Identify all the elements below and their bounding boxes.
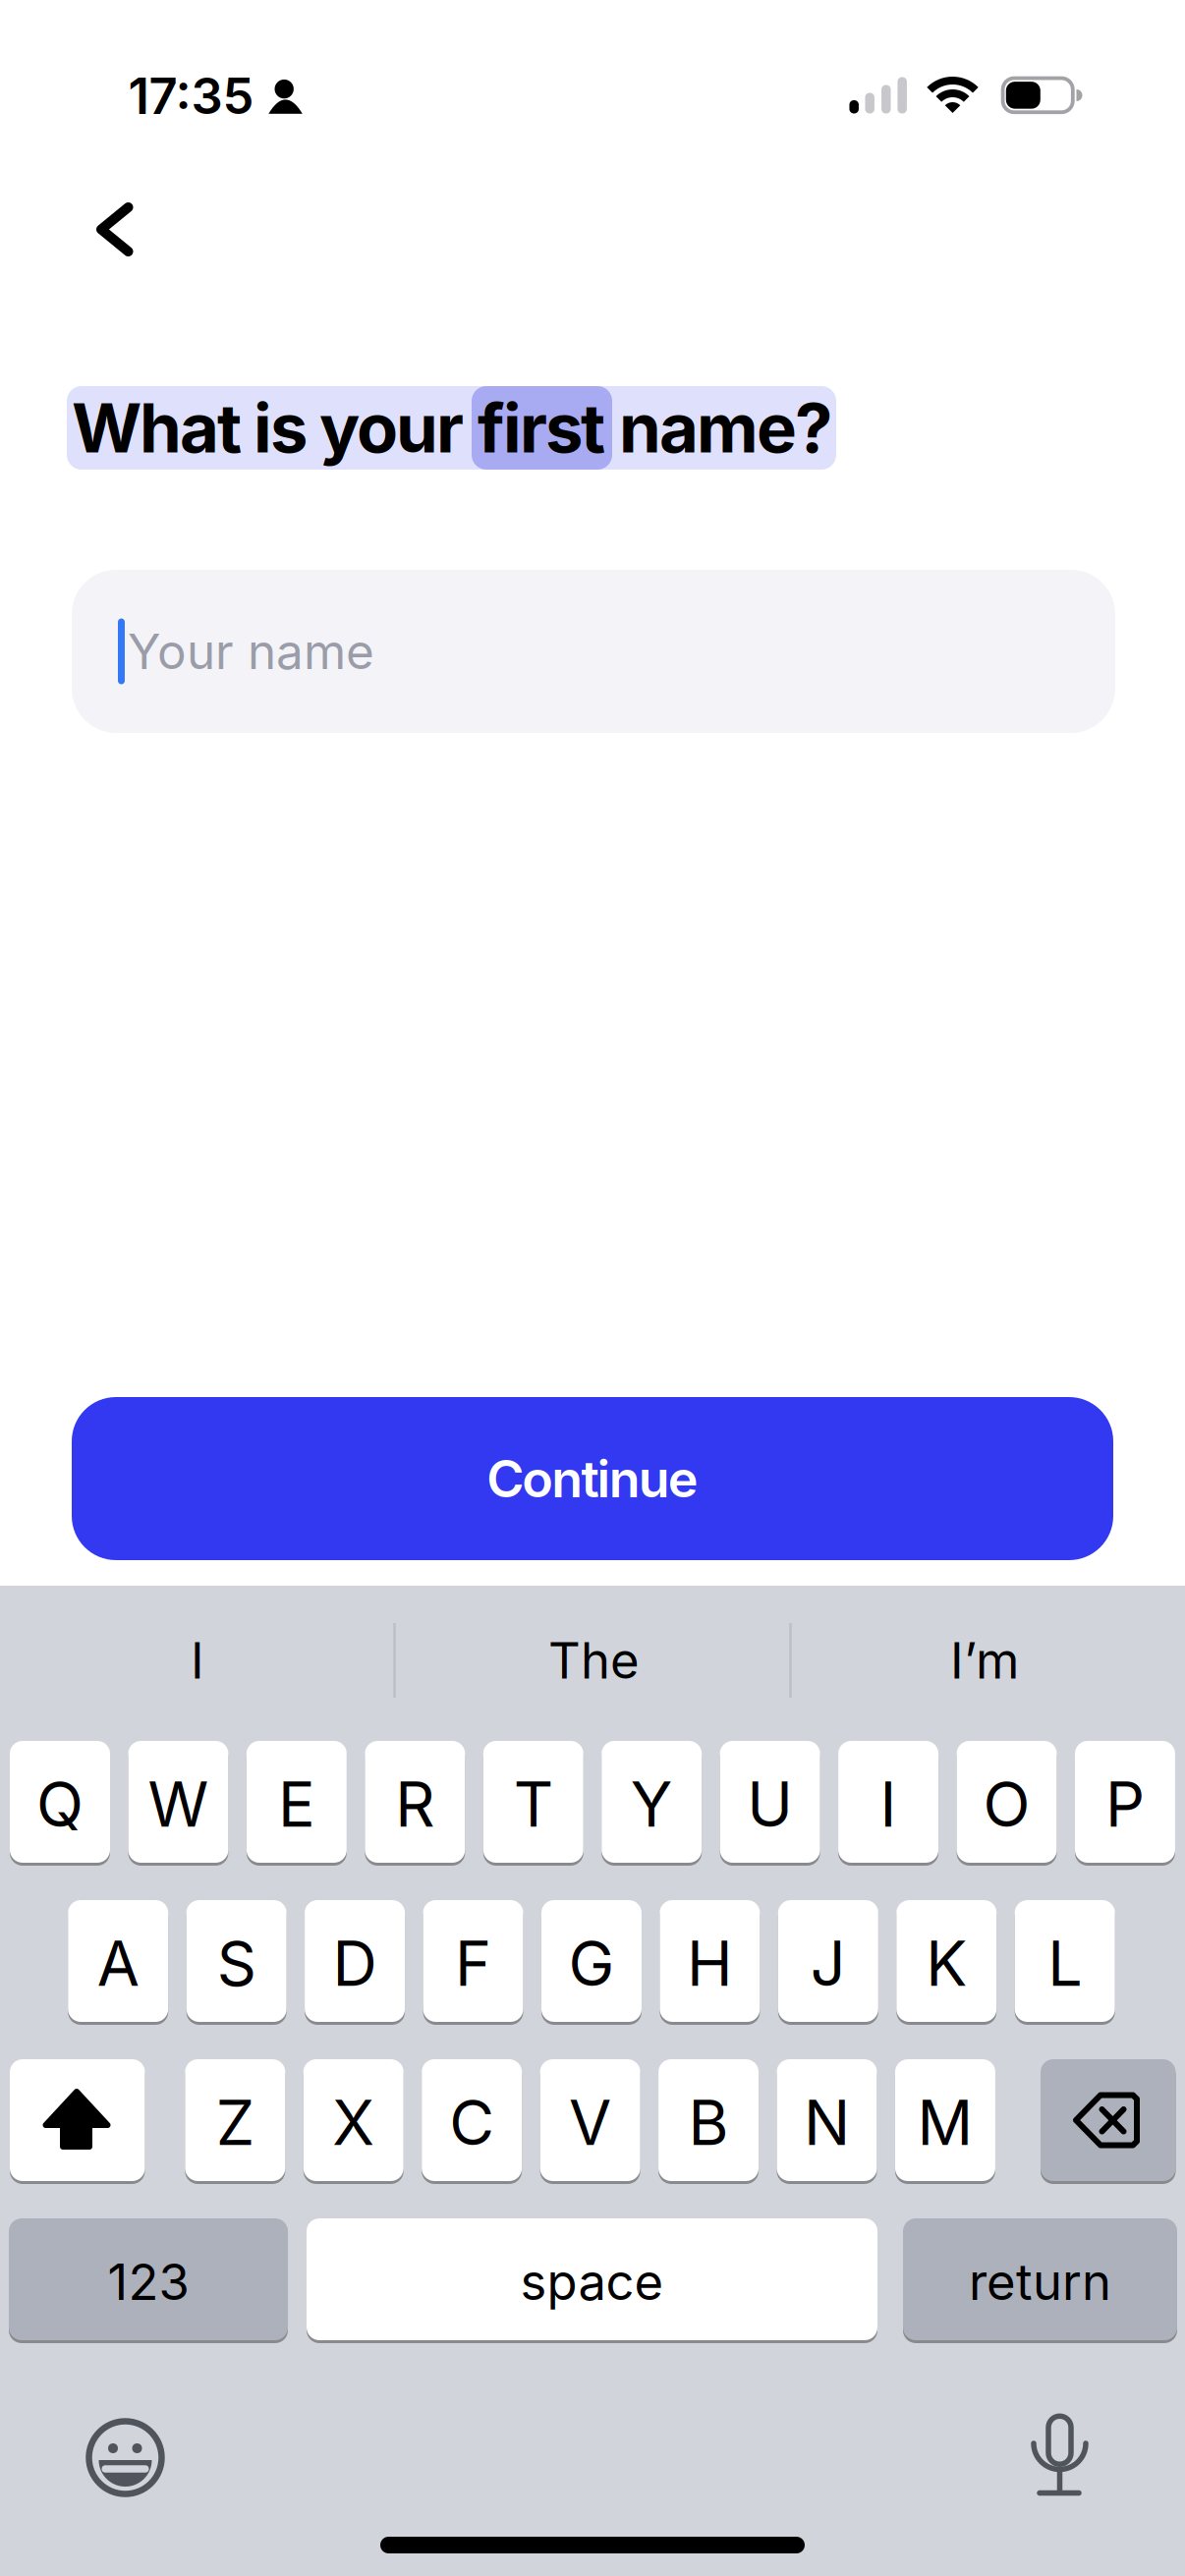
staticText: Continue	[487, 1448, 699, 1509]
staticText: R	[395, 1767, 435, 1842]
staticText: I’m	[950, 1630, 1019, 1690]
staticText: J	[810, 1926, 846, 2001]
button[interactable]: Y	[602, 1741, 702, 1863]
button[interactable]: O	[957, 1741, 1057, 1863]
staticText: T	[514, 1767, 553, 1842]
staticText: name?	[605, 387, 832, 469]
button[interactable]: The	[407, 1592, 781, 1729]
button[interactable]: M	[895, 2059, 995, 2181]
staticText: S	[217, 1926, 256, 2001]
button[interactable]: W	[128, 1741, 228, 1863]
button[interactable]: I	[11, 1592, 384, 1729]
button[interactable]: Continue	[72, 1397, 1113, 1560]
staticText: A	[97, 1926, 139, 2001]
staticText: Your name	[128, 622, 374, 681]
button[interactable]: G	[541, 1900, 642, 2022]
button[interactable]: Your name	[72, 570, 1115, 733]
button[interactable]: J	[778, 1900, 878, 2022]
button[interactable]: H	[660, 1900, 760, 2022]
button[interactable]	[1041, 2059, 1176, 2181]
staticText: X	[332, 2085, 375, 2160]
button[interactable]: space	[307, 2218, 877, 2340]
staticText: B	[688, 2085, 729, 2160]
staticText: 17:35	[128, 66, 254, 126]
button[interactable]	[1011, 2403, 1109, 2501]
staticText: H	[687, 1926, 733, 2001]
button[interactable]: return	[903, 2218, 1177, 2340]
staticText: O	[983, 1767, 1030, 1842]
button[interactable]: 123	[9, 2218, 288, 2340]
button[interactable]	[76, 2408, 174, 2507]
staticText: L	[1048, 1926, 1082, 2001]
button[interactable]: I	[838, 1741, 938, 1863]
button[interactable]: T	[483, 1741, 583, 1863]
button[interactable]: X	[303, 2059, 404, 2181]
staticText: 123	[108, 2252, 189, 2312]
staticText: G	[568, 1926, 615, 2001]
staticText: U	[747, 1767, 793, 1842]
staticText: space	[520, 2252, 664, 2312]
staticText: return	[969, 2252, 1111, 2312]
button[interactable]: R	[365, 1741, 465, 1863]
button[interactable]: K	[896, 1900, 997, 2022]
staticText: first	[478, 387, 605, 469]
button[interactable]	[10, 2059, 145, 2181]
staticText: What is your	[72, 387, 478, 469]
staticText: The	[548, 1630, 640, 1690]
staticText: Q	[36, 1767, 84, 1842]
button[interactable]: Z	[185, 2059, 285, 2181]
button[interactable]: D	[305, 1900, 405, 2022]
staticText: C	[449, 2085, 494, 2160]
staticText: V	[569, 2085, 611, 2160]
button[interactable]: N	[777, 2059, 877, 2181]
button[interactable]: E	[247, 1741, 347, 1863]
staticText: Y	[631, 1767, 673, 1842]
button[interactable]: S	[186, 1900, 287, 2022]
staticText: Z	[216, 2085, 254, 2160]
staticText: W	[148, 1767, 209, 1842]
button[interactable]: A	[68, 1900, 168, 2022]
staticText: F	[455, 1926, 491, 2001]
button[interactable]	[75, 190, 154, 269]
button[interactable]: I’m	[798, 1592, 1171, 1729]
button[interactable]: L	[1015, 1900, 1115, 2022]
staticText: N	[804, 2085, 850, 2160]
staticText: I	[880, 1767, 897, 1842]
button[interactable]: P	[1075, 1741, 1175, 1863]
button[interactable]: V	[540, 2059, 640, 2181]
staticText: K	[926, 1926, 967, 2001]
staticText: D	[333, 1926, 377, 2001]
button[interactable]: B	[658, 2059, 759, 2181]
staticText: E	[278, 1767, 315, 1842]
button[interactable]: F	[423, 1900, 523, 2022]
staticText: M	[917, 2085, 973, 2160]
button[interactable]: Q	[10, 1741, 110, 1863]
staticText: P	[1105, 1767, 1145, 1842]
staticText: I	[191, 1630, 204, 1690]
button[interactable]: U	[720, 1741, 820, 1863]
button[interactable]: C	[422, 2059, 522, 2181]
